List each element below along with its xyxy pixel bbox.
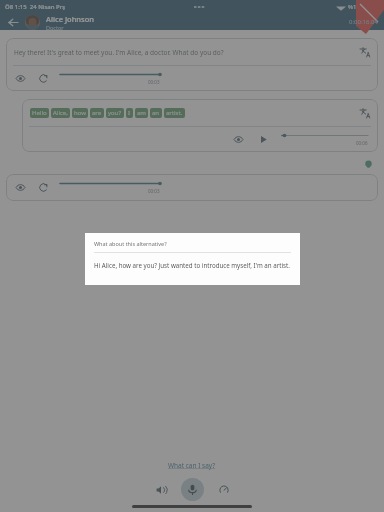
staticText: %100 <box>348 3 364 11</box>
button[interactable]: Seek bar <box>60 180 160 194</box>
staticText: Alice Johnson <box>46 14 94 24</box>
staticText: 00:03 <box>148 79 160 85</box>
staticText: artist. <box>166 109 183 117</box>
button[interactable]: Speaker <box>151 480 171 500</box>
staticText: 0:00:16.04 <box>349 18 378 26</box>
staticText: Ö8 1:15 24 Nisan Prş <box>5 3 66 11</box>
staticText: Hello <box>32 109 47 117</box>
staticText: Hi Alice, how are you? Just wanted to in… <box>94 261 290 269</box>
button[interactable]: Microphone <box>181 478 204 501</box>
staticText: 00:03 <box>148 188 160 194</box>
staticText: What can I say? <box>168 461 216 470</box>
button[interactable]: Translate <box>358 45 372 59</box>
staticText: are <box>92 109 102 117</box>
button[interactable]: Show text <box>232 133 245 146</box>
button[interactable]: What can I say? <box>162 459 222 472</box>
button[interactable]: Play <box>257 133 270 146</box>
staticText: I <box>128 109 131 117</box>
staticText: am <box>137 109 146 117</box>
button[interactable]: What about this alternative? <box>85 233 300 285</box>
button[interactable]: Hint <box>362 158 374 170</box>
button[interactable]: Show text <box>14 181 27 194</box>
button[interactable]: Translate <box>358 106 372 120</box>
button[interactable]: Show text <box>14 72 27 85</box>
button[interactable]: Show text <box>6 174 378 201</box>
button[interactable]: Hello <box>22 99 378 152</box>
button[interactable]: Hey there! It's great to meet you. I'm A… <box>6 38 378 91</box>
button[interactable]: Seek bar <box>282 132 368 146</box>
staticText: 00:06 <box>356 140 368 146</box>
staticText: you? <box>108 109 122 117</box>
staticText: Alice, <box>53 109 68 117</box>
staticText: Hey there! It's great to meet you. I'm A… <box>14 48 358 57</box>
button[interactable]: Playback speed <box>214 480 234 500</box>
button[interactable]: Profile photo <box>25 15 40 30</box>
button[interactable]: Replay <box>37 181 50 194</box>
staticText: how <box>74 109 86 117</box>
button[interactable]: Seek bar <box>60 71 160 85</box>
button[interactable]: Replay <box>37 72 50 85</box>
staticText: What about this alternative? <box>94 240 167 247</box>
staticText: an <box>152 109 160 117</box>
staticText: Doctor <box>46 24 64 30</box>
button[interactable]: Back <box>6 15 20 29</box>
